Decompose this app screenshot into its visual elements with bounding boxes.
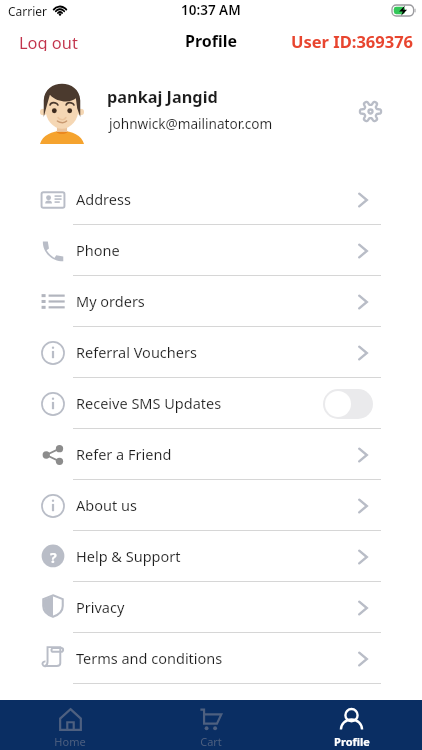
staticText: Terms and conditions — [76, 648, 223, 668]
button[interactable]: Address — [0, 174, 422, 225]
staticText: Refer a Friend — [76, 444, 172, 464]
button[interactable]: About us — [0, 480, 422, 531]
button[interactable]: Profile — [281, 700, 422, 750]
staticText: Carrier — [8, 3, 48, 19]
staticText: Privacy — [76, 597, 125, 617]
staticText: Profile — [334, 734, 370, 749]
staticText: Log out — [19, 31, 78, 51]
button[interactable]: Terms and conditions — [0, 633, 422, 684]
staticText: johnwick@mailinator.com — [109, 114, 273, 133]
button[interactable] — [323, 389, 373, 419]
staticText: User ID:369376 — [291, 30, 414, 52]
button[interactable]: Cart — [140, 700, 281, 750]
staticText: Help & Support — [76, 546, 181, 566]
button[interactable]: My orders — [0, 276, 422, 327]
staticText: pankaj Jangid — [107, 86, 218, 108]
button[interactable]: Referral Vouchers — [0, 327, 422, 378]
button[interactable]: Phone — [0, 225, 422, 276]
staticText: Receive SMS Updates — [76, 393, 222, 413]
button[interactable]: Settings — [355, 96, 386, 127]
staticText: My orders — [76, 291, 145, 311]
staticText: Profile — [185, 30, 238, 52]
button[interactable]: Log out — [0, 28, 88, 54]
button[interactable]: Refer a Friend — [0, 429, 422, 480]
staticText: Home — [54, 734, 86, 749]
staticText: Referral Vouchers — [76, 342, 197, 362]
staticText: ? — [50, 548, 57, 567]
staticText: 10:37 AM — [181, 1, 241, 19]
staticText: About us — [76, 495, 137, 515]
button[interactable]: Privacy — [0, 582, 422, 633]
staticText: Address — [76, 189, 131, 209]
button[interactable]: ? — [0, 531, 422, 582]
button[interactable]: Home — [0, 700, 140, 750]
button[interactable]: Receive SMS Updates — [0, 378, 422, 429]
staticText: Phone — [76, 240, 120, 260]
staticText: Cart — [200, 734, 222, 749]
